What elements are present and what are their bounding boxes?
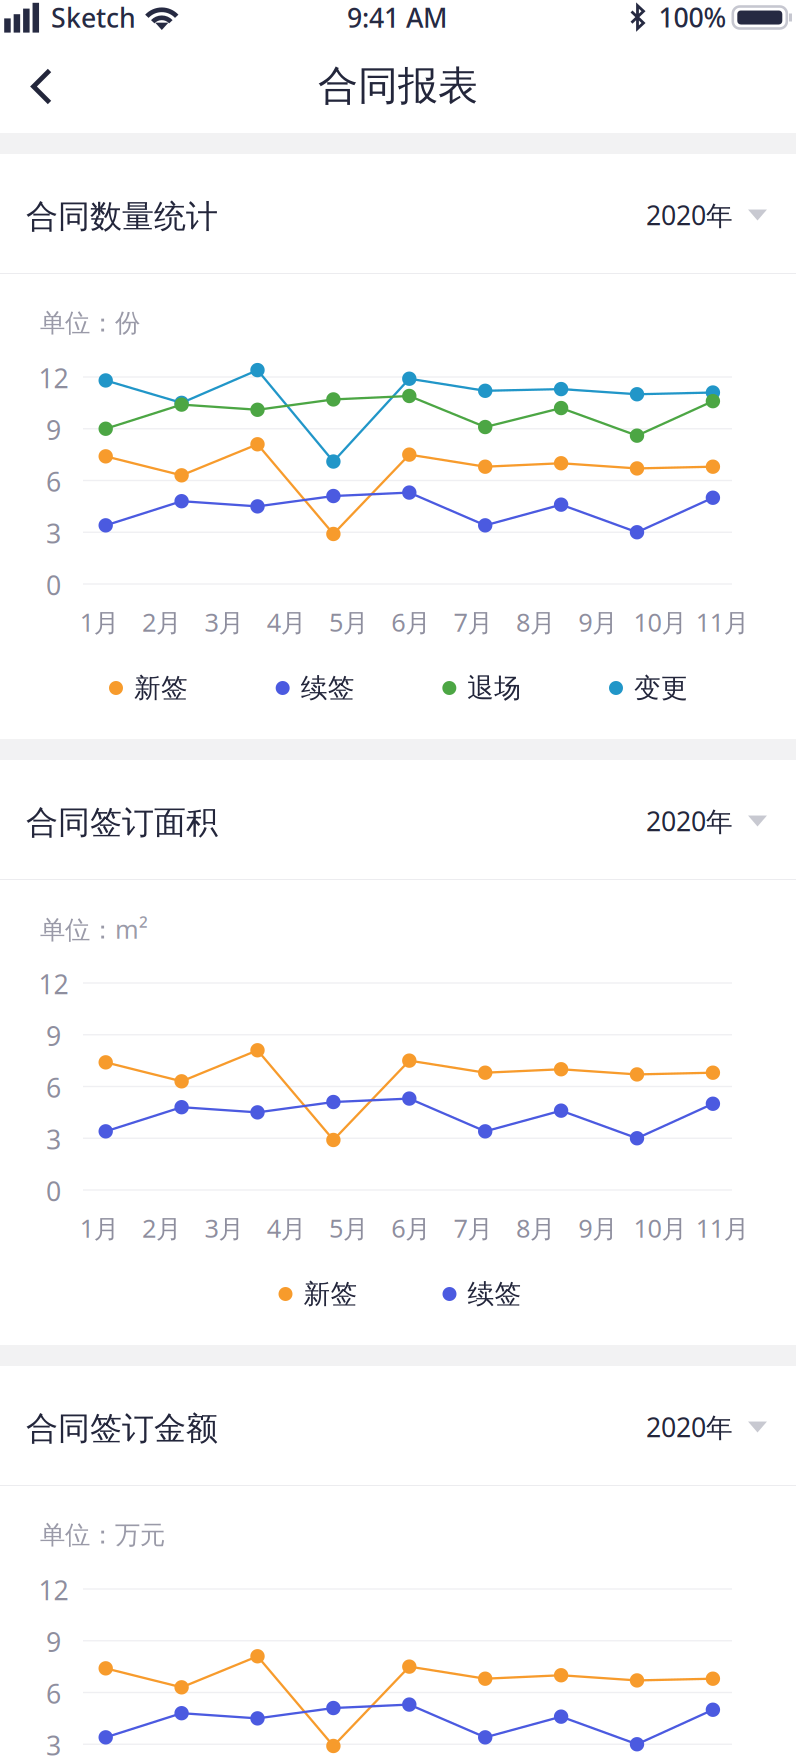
staticText: 1月 — [80, 1211, 119, 1245]
staticText: 12 — [38, 1572, 68, 1608]
staticText: 9月 — [578, 605, 617, 639]
staticText: 单位：份 — [40, 307, 140, 338]
staticText: 4月 — [267, 1211, 306, 1245]
button[interactable]: 2020年 — [597, 184, 767, 246]
staticText: 5月 — [329, 605, 368, 639]
staticText: 0 — [46, 1173, 61, 1209]
staticText: 2020年 — [646, 803, 733, 839]
staticText: 新签 — [303, 1278, 357, 1310]
staticText: 3 — [46, 515, 61, 551]
staticText: 6月 — [391, 1211, 430, 1245]
staticText: 续签 — [467, 1278, 521, 1310]
button[interactable]: Back — [0, 50, 100, 133]
staticText: 6 — [46, 1070, 61, 1105]
button[interactable]: 2020年 — [597, 790, 767, 852]
staticText: 3 — [46, 1727, 61, 1758]
staticText: 5月 — [329, 1211, 368, 1245]
staticText: 8月 — [516, 1211, 555, 1245]
staticText: 9 — [46, 412, 61, 447]
staticText: 4月 — [267, 605, 306, 639]
staticText: 3月 — [204, 1211, 243, 1245]
staticText: 9月 — [578, 1211, 617, 1245]
staticText: 2020年 — [646, 197, 733, 233]
staticText: 7月 — [454, 605, 493, 639]
staticText: 12 — [38, 360, 68, 396]
staticText: 6月 — [391, 605, 430, 639]
staticText: 2020年 — [646, 1409, 733, 1445]
staticText: 9 — [46, 1018, 61, 1053]
staticText: 续签 — [301, 672, 355, 704]
staticText: Sketch — [51, 0, 136, 35]
staticText: 合同签订金额 — [26, 1409, 218, 1448]
staticText: 1月 — [80, 605, 119, 639]
staticText: 11月 — [696, 1211, 749, 1245]
staticText: 10月 — [633, 605, 686, 639]
staticText: 8月 — [516, 605, 555, 639]
staticText: 合同数量统计 — [26, 197, 218, 236]
staticText: 3月 — [204, 605, 243, 639]
staticText: 2月 — [142, 1211, 181, 1245]
staticText: 9 — [46, 1624, 61, 1659]
staticText: 2月 — [142, 605, 181, 639]
staticText: 6 — [46, 1676, 61, 1711]
staticText: 单位：m² — [40, 912, 148, 946]
staticText: 12 — [38, 966, 68, 1002]
staticText: 7月 — [454, 1211, 493, 1245]
staticText: 100% — [658, 0, 726, 35]
staticText: 6 — [46, 464, 61, 499]
staticText: 单位：万元 — [40, 1519, 165, 1550]
staticText: 新签 — [134, 672, 188, 704]
staticText: 3 — [46, 1121, 61, 1157]
staticText: 10月 — [633, 1211, 686, 1245]
button[interactable]: 2020年 — [597, 1396, 767, 1458]
staticText: 0 — [46, 567, 61, 603]
staticText: 退场 — [467, 672, 521, 704]
staticText: 合同签订面积 — [26, 803, 218, 842]
staticText: 9:41 AM — [347, 0, 447, 35]
staticText: 合同报表 — [318, 61, 478, 110]
staticText: 11月 — [696, 605, 749, 639]
staticText: 变更 — [634, 672, 688, 704]
